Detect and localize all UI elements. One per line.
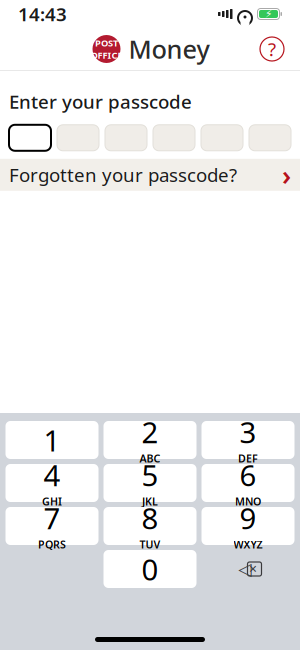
staticText: 0 — [141, 549, 158, 588]
button[interactable]: 8 — [103, 507, 196, 545]
staticText: ? — [268, 37, 276, 61]
staticText: 9 — [239, 498, 256, 537]
button[interactable]: 2 — [103, 421, 196, 459]
button[interactable]: 9 — [201, 507, 294, 545]
staticText: OFFICE — [90, 49, 122, 61]
staticText: ✕ — [248, 563, 257, 575]
staticText: › — [282, 157, 291, 192]
staticText: 4 — [43, 455, 60, 494]
staticText: JKL — [142, 494, 158, 509]
staticText: GHI — [42, 494, 62, 509]
staticText: WXYZ — [233, 537, 262, 552]
staticText: 14:43 — [18, 2, 67, 26]
staticText: DEF — [238, 451, 258, 466]
staticText: 7 — [43, 498, 60, 537]
button[interactable]: 5 — [103, 464, 196, 502]
staticText: ⚡︎ — [265, 8, 272, 20]
button[interactable]: 6 — [201, 464, 294, 502]
staticText: 6 — [239, 455, 256, 494]
button[interactable]: 7 — [5, 507, 98, 545]
staticText: 5 — [141, 455, 158, 494]
staticText: POST — [95, 37, 118, 49]
staticText: ◁ — [238, 559, 251, 579]
staticText: 3 — [239, 412, 256, 451]
button[interactable]: 3 — [201, 421, 294, 459]
staticText: 2 — [141, 412, 158, 451]
button[interactable]: 4 — [5, 464, 98, 502]
button[interactable]: Delete — [201, 550, 294, 588]
staticText: Enter your passcode — [9, 89, 192, 114]
button[interactable]: 0 — [103, 550, 196, 588]
button[interactable]: Help — [252, 29, 292, 69]
staticText: 8 — [141, 498, 158, 537]
staticText: TUV — [139, 537, 160, 552]
button[interactable]: 1 — [5, 421, 98, 459]
button[interactable]: Forgotten your passcode? — [0, 159, 300, 191]
staticText: PQRS — [38, 537, 66, 552]
staticText: Forgotten your passcode? — [9, 162, 237, 187]
staticText: Money — [128, 32, 209, 66]
staticText: 1 — [43, 420, 60, 459]
staticText: MNO — [235, 494, 261, 509]
staticText: ABC — [139, 451, 160, 466]
